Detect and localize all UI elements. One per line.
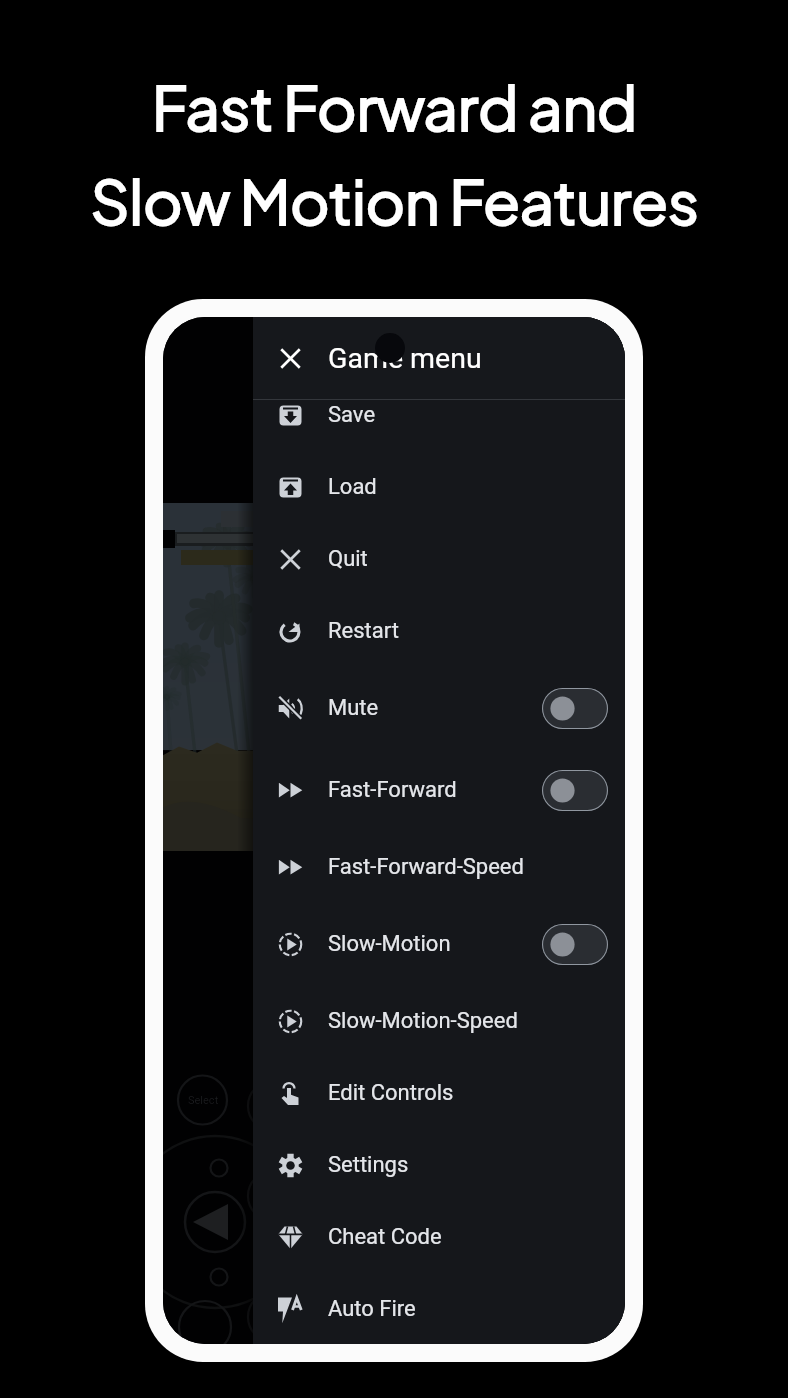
button[interactable]: Mute xyxy=(253,667,625,749)
button[interactable]: Edit Controls xyxy=(253,1057,625,1129)
button[interactable]: Toggle xyxy=(542,924,608,965)
button[interactable]: Slow-Motion xyxy=(253,903,625,985)
staticText: Slow-Motion-Speed xyxy=(328,1008,518,1034)
staticText: Fast-Forward xyxy=(328,777,457,803)
staticText: Restart xyxy=(328,618,399,644)
button[interactable]: Auto Fire xyxy=(253,1273,625,1344)
button[interactable]: Slow-Motion-Speed xyxy=(253,985,625,1057)
staticText: Auto Fire xyxy=(328,1296,416,1322)
staticText: Select xyxy=(188,1094,219,1107)
staticText: Fast Forward and xyxy=(152,68,637,144)
button[interactable]: Fast-Forward-Speed xyxy=(253,831,625,903)
staticText: Load xyxy=(328,474,377,500)
staticText: Mute xyxy=(328,695,379,721)
staticText: Quit xyxy=(328,546,368,572)
staticText: Game menu xyxy=(328,342,482,375)
staticText: Slow-Motion xyxy=(328,931,451,957)
staticText: Fast-Forward-Speed xyxy=(328,854,524,880)
staticText: Save xyxy=(328,402,376,428)
button[interactable]: Restart xyxy=(253,595,625,667)
button[interactable]: Toggle xyxy=(542,770,608,811)
button[interactable]: Load xyxy=(253,451,625,523)
button[interactable]: Fast-Forward xyxy=(253,749,625,831)
button[interactable]: Quit xyxy=(253,523,625,595)
button[interactable]: Settings xyxy=(253,1129,625,1201)
button[interactable]: Toggle xyxy=(542,688,608,729)
staticText: Cheat Code xyxy=(328,1224,442,1250)
staticText: Settings xyxy=(328,1152,409,1178)
button[interactable]: Save xyxy=(253,379,625,451)
staticText: Edit Controls xyxy=(328,1080,454,1106)
button[interactable]: Close menu xyxy=(275,343,305,373)
button[interactable]: Cheat Code xyxy=(253,1201,625,1273)
staticText: Slow Motion Features xyxy=(90,162,699,238)
